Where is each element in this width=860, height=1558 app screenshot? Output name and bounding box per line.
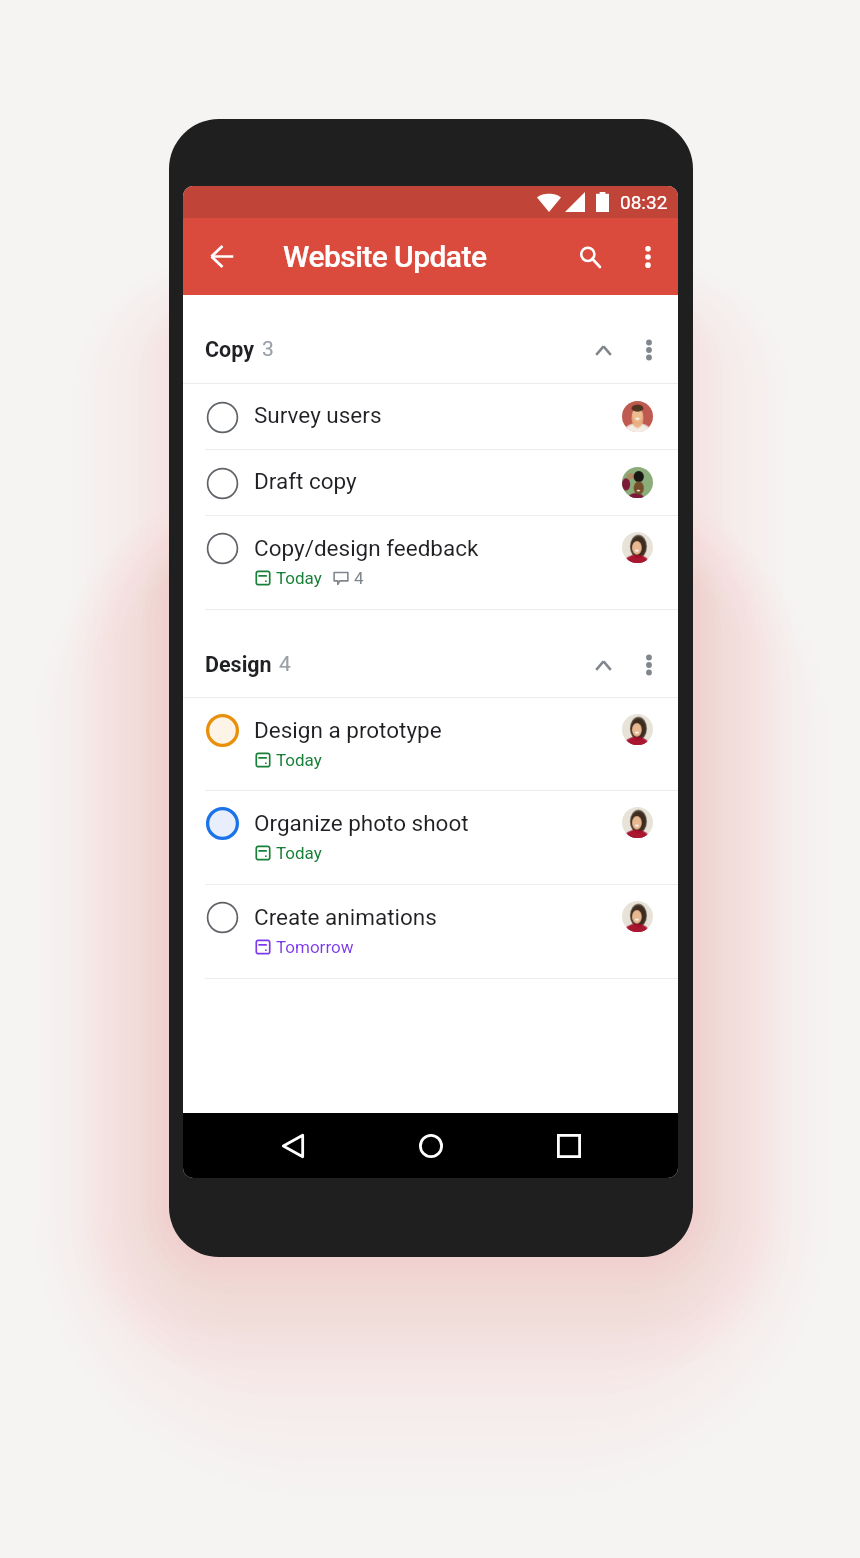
staticText: 08:32 <box>620 191 668 213</box>
button[interactable]: Home <box>398 1113 464 1178</box>
staticText: 4 <box>354 568 364 588</box>
staticText: Tomorrow <box>276 937 354 957</box>
staticText: Today <box>276 750 322 770</box>
button[interactable]: Collapse section <box>568 610 620 697</box>
button[interactable]: Mark Draft copy complete <box>183 450 678 515</box>
button[interactable]: Section options <box>620 610 678 697</box>
staticText: Copy <box>205 337 255 362</box>
button[interactable]: Back <box>260 1113 326 1178</box>
staticText: Design a prototype <box>254 717 442 743</box>
button[interactable]: Mark Copy/design feedback complete <box>183 516 678 609</box>
button[interactable]: Mark Survey users complete <box>206 384 239 449</box>
button[interactable]: Search <box>562 218 618 295</box>
button[interactable]: Assignee <box>612 384 662 449</box>
staticText: Design <box>205 652 272 677</box>
button[interactable]: Mark Create animations complete <box>183 885 678 978</box>
staticText: Survey users <box>254 402 382 428</box>
button[interactable]: More options <box>618 218 678 295</box>
button[interactable]: Recent apps <box>536 1113 602 1178</box>
button[interactable]: Mark Copy/design feedback complete <box>206 516 239 609</box>
button[interactable]: Mark Organize photo shoot complete <box>206 791 239 884</box>
button[interactable]: Mark Create animations complete <box>206 885 239 978</box>
staticText: Draft copy <box>254 468 357 494</box>
staticText: Organize photo shoot <box>254 810 469 836</box>
button[interactable]: Assignee <box>612 450 662 515</box>
button[interactable]: Mark Design a prototype complete <box>183 698 678 790</box>
button[interactable]: Collapse section <box>568 295 620 383</box>
button[interactable]: Assignee <box>612 516 662 609</box>
button[interactable]: Mark Organize photo shoot complete <box>183 791 678 884</box>
staticText: Create animations <box>254 904 437 930</box>
staticText: Today <box>276 568 322 588</box>
staticText: Today <box>276 843 322 863</box>
staticText: Copy/design feedback <box>254 535 479 561</box>
button[interactable]: Assignee <box>612 791 662 884</box>
button[interactable]: Back <box>183 218 260 295</box>
staticText: 3 <box>262 337 274 362</box>
staticText: Website Update <box>283 239 487 274</box>
button[interactable]: Assignee <box>612 698 662 790</box>
button[interactable]: Design <box>183 610 678 697</box>
button[interactable]: Mark Survey users complete <box>183 384 678 449</box>
button[interactable]: Mark Draft copy complete <box>206 450 239 515</box>
button[interactable]: Copy <box>183 295 678 383</box>
button[interactable]: Section options <box>620 295 678 383</box>
button[interactable]: Assignee <box>612 885 662 978</box>
button[interactable]: Mark Design a prototype complete <box>206 698 239 790</box>
staticText: 4 <box>279 652 291 677</box>
